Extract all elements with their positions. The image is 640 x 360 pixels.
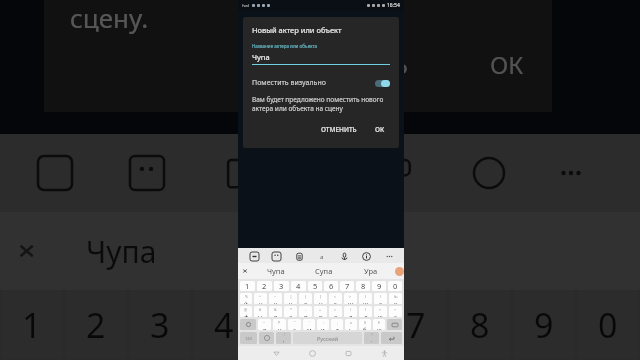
button[interactable]: Info bbox=[359, 249, 373, 263]
staticText: ^ bbox=[259, 294, 262, 299]
button[interactable]: More options bbox=[382, 249, 396, 263]
staticText: 4 bbox=[214, 302, 234, 348]
button[interactable]: Р bbox=[273, 319, 286, 330]
button[interactable]: Collapse suggestions bbox=[238, 263, 252, 279]
staticText: э bbox=[394, 313, 397, 317]
staticText: 7 bbox=[406, 302, 426, 348]
staticText: ТЬ bbox=[380, 48, 408, 81]
staticText: € bbox=[378, 320, 381, 325]
button[interactable]: - bbox=[299, 306, 312, 317]
button[interactable]: ОТМЕНИТЬ bbox=[316, 122, 362, 137]
button[interactable]: Русский bbox=[293, 332, 362, 344]
button[interactable]: < bbox=[329, 293, 342, 304]
button[interactable]: 1 bbox=[240, 281, 255, 291]
button[interactable]: ÷ bbox=[389, 306, 402, 317]
button[interactable]: 0 bbox=[388, 281, 402, 291]
button[interactable]: Поместить визуально bbox=[252, 78, 390, 88]
button[interactable]: Comma bbox=[276, 332, 291, 344]
button[interactable]: 6 bbox=[324, 281, 338, 291]
button[interactable]: ' bbox=[303, 319, 315, 330]
button[interactable]: Ура bbox=[347, 263, 394, 279]
button[interactable]: Translate bbox=[314, 249, 328, 263]
button[interactable]: Backspace bbox=[387, 319, 402, 330]
button[interactable]: | bbox=[284, 293, 297, 304]
button[interactable]: & bbox=[269, 306, 282, 317]
button[interactable]: 8 bbox=[356, 281, 370, 291]
button[interactable]: № bbox=[389, 293, 402, 304]
button[interactable]: ОК bbox=[370, 122, 390, 137]
button[interactable]: Stickers bbox=[269, 249, 283, 263]
button[interactable]: Shift bbox=[240, 319, 256, 330]
staticText: ы bbox=[258, 313, 263, 317]
button[interactable]: ~ bbox=[269, 293, 282, 304]
button[interactable]: % bbox=[240, 293, 252, 304]
button[interactable]: ( bbox=[344, 306, 357, 317]
staticText: ш bbox=[348, 300, 354, 304]
button[interactable]: ^ bbox=[254, 293, 267, 304]
staticText: 1 bbox=[22, 302, 42, 348]
staticText: ь bbox=[349, 326, 353, 330]
staticText: Новый актер или объект bbox=[252, 25, 342, 35]
staticText: Название актера или объекта bbox=[252, 43, 318, 49]
button[interactable]: @ bbox=[240, 306, 252, 317]
button[interactable]: = bbox=[329, 306, 342, 317]
staticText: Русский bbox=[317, 335, 339, 342]
button[interactable]: Emoji bbox=[259, 332, 274, 344]
staticText: 16:54 bbox=[387, 2, 400, 9]
button[interactable]: 5 bbox=[308, 281, 322, 291]
button[interactable]: * bbox=[284, 306, 297, 317]
button[interactable]: Enter bbox=[381, 332, 402, 344]
button[interactable]: Супа bbox=[300, 263, 347, 279]
staticText: ОК bbox=[375, 125, 385, 134]
staticText: х bbox=[394, 300, 398, 304]
button[interactable]: { bbox=[299, 293, 312, 304]
button[interactable]: + bbox=[314, 306, 327, 317]
button[interactable]: ; bbox=[331, 319, 343, 330]
button[interactable]: 2 bbox=[257, 281, 272, 291]
button[interactable]: € bbox=[373, 319, 385, 330]
staticText: 6 bbox=[342, 302, 362, 348]
staticText: н bbox=[319, 300, 323, 304]
staticText: п bbox=[304, 313, 308, 317]
button[interactable]: ) bbox=[359, 306, 372, 317]
button[interactable]: Clipboard bbox=[292, 249, 306, 263]
button[interactable]: " bbox=[288, 319, 301, 330]
button[interactable]: Period bbox=[364, 332, 379, 344]
button[interactable]: # bbox=[254, 306, 267, 317]
staticText: ) bbox=[380, 294, 382, 299]
button[interactable]: 7 bbox=[340, 281, 354, 291]
button[interactable]: Чупа bbox=[252, 263, 300, 279]
staticText: ? bbox=[371, 332, 373, 337]
button[interactable]: GIF bbox=[247, 249, 261, 263]
staticText: ф bbox=[244, 313, 249, 317]
button[interactable]: Symbols bbox=[240, 332, 257, 344]
button[interactable]: $ bbox=[359, 319, 371, 330]
button[interactable]: Recents bbox=[341, 346, 355, 360]
button[interactable]: Back bbox=[269, 346, 283, 360]
button[interactable]: ~ bbox=[258, 319, 271, 330]
staticText: б bbox=[363, 326, 367, 330]
staticText: 0 bbox=[598, 302, 618, 348]
staticText: 4 bbox=[296, 281, 301, 291]
staticText: ! bbox=[284, 332, 285, 337]
button[interactable]: ь bbox=[345, 319, 357, 330]
button[interactable]: 4 bbox=[291, 281, 306, 291]
staticText: ~ bbox=[274, 294, 277, 299]
button[interactable]: } bbox=[314, 293, 327, 304]
button[interactable]: 3 bbox=[274, 281, 289, 291]
button[interactable]: > bbox=[344, 293, 357, 304]
staticText: 123 bbox=[245, 336, 252, 341]
button[interactable]: × bbox=[374, 306, 387, 317]
button[interactable]: ) bbox=[374, 293, 387, 304]
button[interactable]: ( bbox=[359, 293, 372, 304]
staticText: < bbox=[334, 294, 337, 299]
button[interactable]: Home bbox=[305, 346, 319, 360]
button[interactable]: Voice input bbox=[337, 249, 351, 263]
button[interactable]: : bbox=[317, 319, 329, 330]
button[interactable]: Accessibility bbox=[377, 346, 391, 360]
staticText: о bbox=[334, 313, 338, 317]
button[interactable]: 9 bbox=[372, 281, 386, 291]
staticText: ю bbox=[377, 326, 382, 330]
staticText: № bbox=[394, 294, 398, 299]
